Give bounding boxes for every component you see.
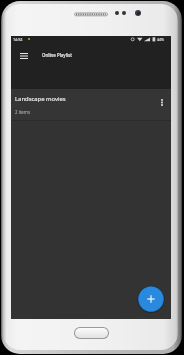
- button[interactable]: [11, 89, 171, 121]
- button[interactable]: Home: [74, 327, 109, 339]
- staticText: 44%: [157, 37, 165, 42]
- staticText: Landscape movies: [15, 95, 66, 103]
- staticText: Online Playlist: [42, 52, 72, 58]
- staticText: 14:53: [13, 37, 23, 42]
- button[interactable]: Add: [136, 284, 166, 314]
- button[interactable]: Open navigation menu: [15, 47, 32, 64]
- button[interactable]: More options: [155, 96, 168, 109]
- staticText: 2 items: [15, 109, 31, 115]
